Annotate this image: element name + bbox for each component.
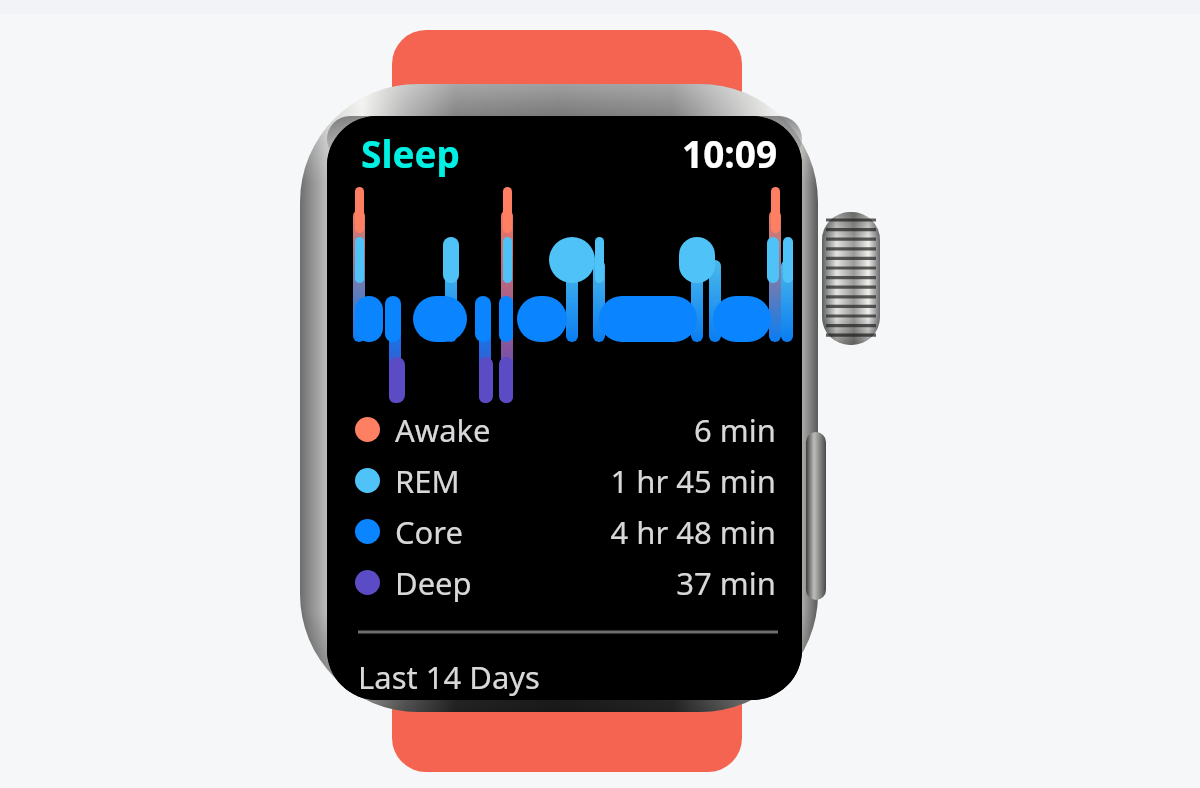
staticText: REM	[395, 460, 460, 502]
staticText: 6 min	[694, 409, 776, 451]
button[interactable]: REM	[327, 455, 802, 506]
button[interactable]: Awake	[327, 404, 802, 455]
staticText: 1 hr 45 min	[610, 460, 776, 502]
staticText: 37 min	[676, 562, 776, 604]
staticText: Core	[395, 511, 464, 553]
button[interactable]: Deep	[327, 557, 802, 608]
staticText: 10:09	[682, 128, 778, 178]
staticText: Last 14 Days	[358, 656, 540, 698]
staticText: Deep	[395, 562, 472, 604]
button[interactable]: Sleep	[361, 128, 460, 178]
staticText: 4 hr 48 min	[610, 511, 776, 553]
button[interactable]: Sleep stages chart	[327, 188, 802, 418]
button[interactable]: Last 14 Days	[358, 656, 778, 700]
staticText: Awake	[395, 409, 491, 451]
button[interactable]: Core	[327, 506, 802, 557]
